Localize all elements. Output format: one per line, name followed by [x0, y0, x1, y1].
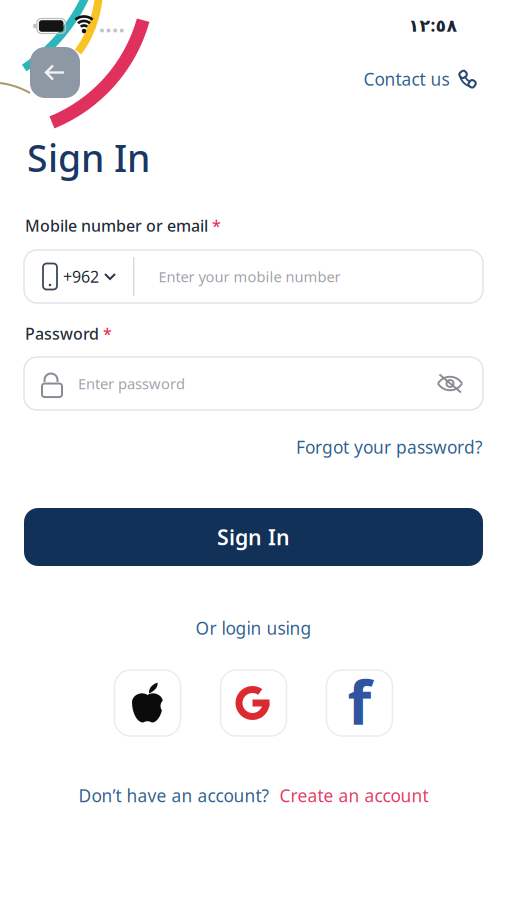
button[interactable]: Forgot your password? [296, 435, 483, 458]
staticText: Enter your mobile number [158, 267, 340, 286]
staticText: f [347, 660, 371, 742]
staticText: Contact us [363, 67, 449, 90]
staticText: Sign In [217, 523, 290, 551]
button[interactable]: Sign in with Google [220, 670, 286, 736]
staticText: Mobile number or email [25, 215, 208, 236]
button[interactable]: Create an account [279, 784, 428, 807]
staticText: ١٢:٥٨ [408, 13, 457, 36]
staticText: +962 [63, 266, 99, 287]
button[interactable]: Contact us [363, 67, 476, 90]
button[interactable]: Country code +962 [24, 262, 116, 290]
staticText: Or login using [195, 616, 311, 639]
staticText: Don’t have an account? [78, 784, 269, 807]
button[interactable]: Back [30, 47, 80, 98]
button[interactable]: Sign in with Apple [114, 670, 180, 736]
staticText: * [103, 323, 112, 344]
button[interactable]: Sign in with Facebook [326, 670, 392, 736]
button[interactable]: Sign In [24, 508, 483, 566]
staticText: Password [25, 323, 99, 344]
staticText: * [212, 215, 221, 236]
staticText: Forgot your password? [296, 435, 483, 458]
staticText: Create an account [279, 784, 428, 807]
button[interactable]: Show password [437, 374, 483, 393]
staticText: Enter password [78, 374, 185, 393]
staticText: Sign In [27, 133, 150, 182]
